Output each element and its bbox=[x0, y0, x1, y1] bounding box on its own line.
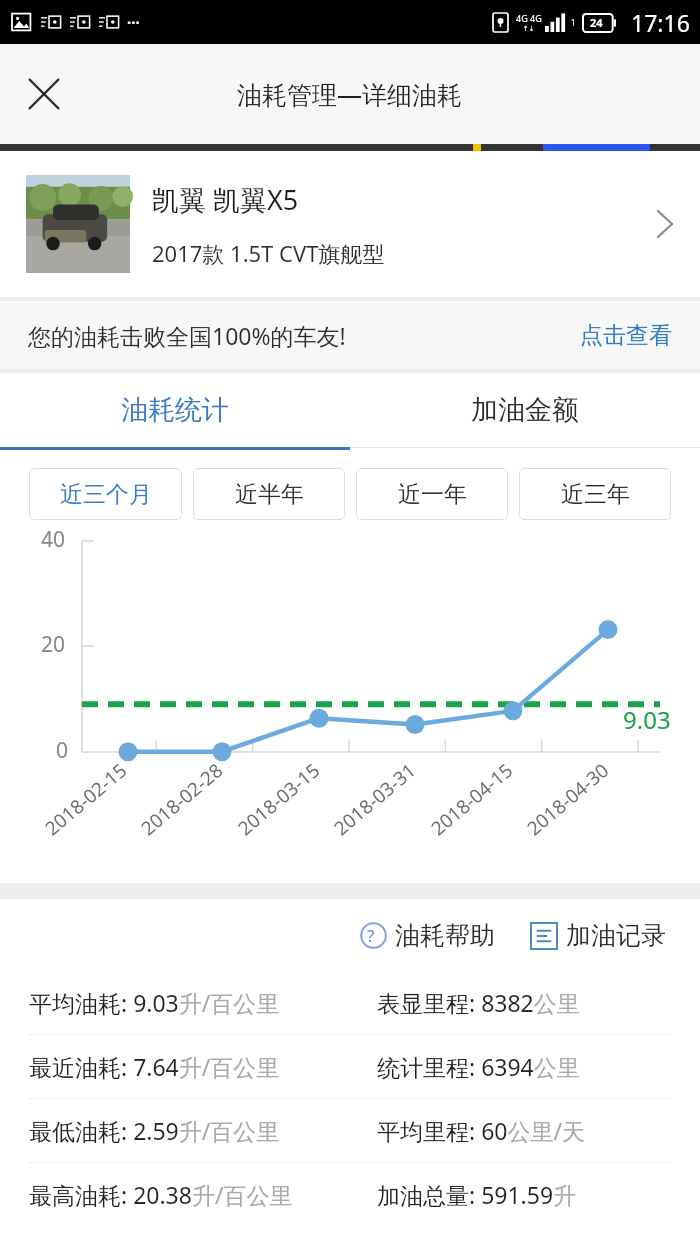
staticText: 1 bbox=[571, 17, 576, 28]
staticText: 20 bbox=[41, 630, 66, 659]
staticText: 2017款 1.5T CVT旗舰型 bbox=[152, 238, 385, 268]
button[interactable]: 加油记录 bbox=[527, 920, 670, 951]
staticText: 4G bbox=[516, 12, 528, 24]
staticText: 凯翼 凯翼X5 bbox=[152, 181, 299, 218]
staticText: 2018-03-15 bbox=[232, 757, 326, 841]
staticText: 平均油耗: 9.03升/百公里 bbox=[29, 987, 280, 1018]
button[interactable]: 近半年 bbox=[193, 468, 345, 520]
staticText: 4G bbox=[530, 12, 542, 24]
button[interactable]: 凯翼 凯翼X5 bbox=[0, 151, 700, 297]
staticText: 近一年 bbox=[398, 480, 467, 509]
staticText: 9.03 bbox=[623, 703, 671, 736]
staticText: 近三年 bbox=[561, 480, 630, 509]
staticText: 加油记录 bbox=[566, 920, 666, 951]
button[interactable]: 点击查看 bbox=[580, 321, 672, 350]
staticText: ? bbox=[367, 924, 375, 947]
staticText: 2018-02-28 bbox=[135, 757, 229, 841]
staticText: 油耗统计 bbox=[121, 393, 229, 427]
staticText: 17:16 bbox=[631, 7, 690, 38]
button[interactable]: 近三个月 bbox=[29, 468, 182, 520]
button[interactable]: 近三年 bbox=[519, 468, 671, 520]
staticText: 统计里程: 6394公里 bbox=[377, 1051, 580, 1082]
button[interactable]: Close bbox=[18, 68, 70, 120]
staticText: 加油总量: 591.59升 bbox=[377, 1179, 577, 1210]
button[interactable]: 油耗统计 bbox=[0, 373, 350, 447]
button[interactable]: 加油金额 bbox=[350, 373, 700, 447]
staticText: 点击查看 bbox=[580, 321, 672, 350]
staticText: 2018-04-15 bbox=[425, 757, 519, 841]
staticText: 近三个月 bbox=[60, 480, 152, 509]
staticText: 您的油耗击败全国100%的车友! bbox=[28, 320, 346, 351]
staticText: 表显里程: 8382公里 bbox=[377, 987, 580, 1018]
staticText: 油耗帮助 bbox=[395, 920, 495, 951]
staticText: 40 bbox=[41, 525, 66, 554]
staticText: 2018-04-30 bbox=[521, 757, 615, 841]
button[interactable]: ? bbox=[356, 920, 499, 951]
staticText: 油耗管理—详细油耗 bbox=[237, 77, 463, 111]
staticText: 加油金额 bbox=[471, 393, 579, 427]
staticText: 最低油耗: 2.59升/百公里 bbox=[29, 1115, 280, 1146]
staticText: 近半年 bbox=[235, 480, 304, 509]
staticText: 最高油耗: 20.38升/百公里 bbox=[29, 1179, 293, 1210]
staticText: 2018-02-15 bbox=[39, 757, 133, 841]
staticText: ↑↓ bbox=[523, 25, 535, 33]
button[interactable]: 近一年 bbox=[356, 468, 508, 520]
staticText: 24 bbox=[590, 15, 603, 30]
staticText: ··· bbox=[127, 12, 140, 32]
staticText: 2018-03-31 bbox=[328, 757, 422, 841]
staticText: 最近油耗: 7.64升/百公里 bbox=[29, 1051, 280, 1082]
staticText: 平均里程: 60公里/天 bbox=[377, 1115, 586, 1146]
staticText: 0 bbox=[56, 736, 69, 765]
